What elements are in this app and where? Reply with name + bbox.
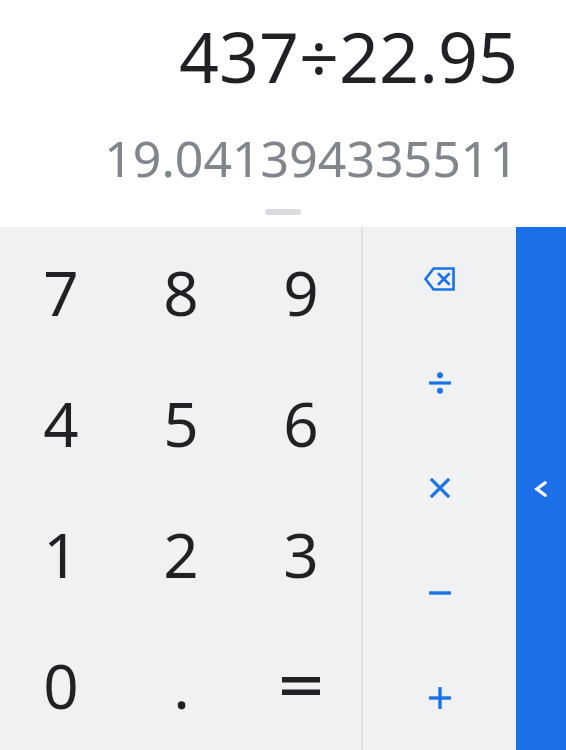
button[interactable]: 437÷22.95 [24,8,518,103]
button[interactable]: 6 [241,357,361,488]
staticText: . [173,643,190,727]
button[interactable]: 2 [121,488,241,619]
button[interactable]: Multiply [363,435,516,540]
staticText: 0 [43,643,79,727]
button[interactable]: 0 [0,619,121,750]
button[interactable]: 8 [121,227,241,357]
staticText: 437÷22.95 [24,8,518,103]
staticText: 4 [43,381,79,465]
staticText: 7 [43,250,79,334]
button[interactable]: Subtract [363,540,516,645]
staticText: 19.041394335511 [24,124,518,192]
button[interactable]: Backspace [363,227,516,331]
button[interactable]: Divide [363,331,516,435]
button[interactable]: . [121,619,241,750]
button[interactable]: 3 [241,488,361,619]
button[interactable]: 7 [0,227,121,357]
button[interactable]: Add [363,645,516,750]
staticText: 3 [283,512,319,596]
button[interactable]: 9 [241,227,361,357]
button[interactable]: 1 [0,488,121,619]
button[interactable]: Expand advanced pad [516,227,566,750]
staticText: 1 [43,512,79,596]
staticText: 5 [163,381,199,465]
button[interactable] [241,619,361,750]
button[interactable]: 5 [121,357,241,488]
button[interactable]: 4 [0,357,121,488]
staticText: 2 [163,512,199,596]
staticText: 8 [163,250,199,334]
button[interactable]: 19.041394335511 [24,124,518,192]
staticText: 9 [283,250,319,334]
staticText: 6 [283,381,319,465]
